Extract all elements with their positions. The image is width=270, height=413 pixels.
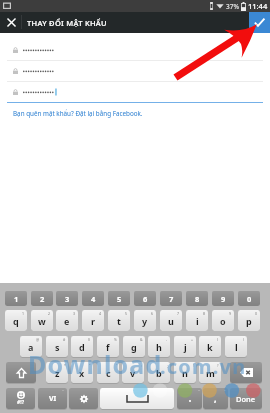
button[interactable]: r — [82, 310, 104, 331]
staticText: @ — [36, 337, 40, 342]
button[interactable]: Period — [177, 388, 202, 409]
staticText: 2 — [48, 311, 51, 316]
staticText: p — [246, 315, 252, 327]
button[interactable]: 1 — [5, 291, 27, 306]
staticText: .com.vn — [160, 353, 247, 380]
button[interactable]: t — [108, 310, 130, 331]
staticText: n — [182, 367, 188, 379]
staticText: 3 — [73, 311, 76, 316]
staticText: 8 — [195, 294, 200, 304]
staticText: 3 — [65, 294, 70, 304]
staticText: f — [106, 341, 110, 353]
staticText: 0 — [255, 311, 258, 316]
button[interactable]: n — [174, 362, 196, 383]
button[interactable]: a — [20, 336, 42, 357]
button[interactable]: 4 — [82, 291, 104, 306]
button[interactable]: Shift — [6, 362, 36, 383]
staticText: 1 — [22, 311, 25, 316]
button[interactable]: Emoji — [6, 388, 35, 409]
staticText: 4 — [91, 294, 96, 304]
button[interactable]: o — [212, 310, 234, 331]
staticText: b — [156, 367, 162, 379]
button[interactable]: g — [123, 336, 145, 357]
staticText: h — [156, 341, 162, 353]
button[interactable] — [0, 82, 270, 102]
button[interactable]: Backspace — [230, 362, 262, 383]
button[interactable]: x — [71, 362, 93, 383]
staticText: 6 — [151, 311, 154, 316]
staticText: q — [13, 315, 19, 327]
button[interactable]: q — [5, 310, 27, 331]
staticText: 8 — [203, 311, 206, 316]
button[interactable]: e — [56, 310, 78, 331]
staticText: 7 — [177, 311, 180, 316]
button[interactable]: Done — [230, 388, 262, 409]
staticText: Download — [28, 347, 163, 381]
button[interactable]: VI — [38, 388, 67, 409]
staticText: 6 — [143, 294, 148, 304]
staticText: d — [79, 341, 85, 353]
staticText: 11:44 — [248, 1, 268, 11]
staticText: ·· — [198, 388, 200, 393]
button[interactable]: h — [148, 336, 170, 357]
staticText: a — [28, 341, 34, 353]
staticText: # — [63, 337, 66, 342]
button[interactable]: 8 — [186, 291, 208, 306]
button[interactable]: 6 — [134, 291, 156, 306]
button[interactable]: v — [122, 362, 144, 383]
staticText: o — [220, 315, 226, 327]
button[interactable]: Bạn quên mật khẩu? Đặt lại bằng Facebook… — [13, 109, 143, 118]
staticText: e — [64, 315, 70, 327]
button[interactable]: y — [134, 310, 156, 331]
staticText: Done — [236, 394, 256, 404]
button[interactable]: s — [46, 336, 68, 357]
staticText: l — [235, 341, 238, 353]
button[interactable]: 5 — [108, 291, 130, 306]
button[interactable] — [0, 61, 270, 81]
staticText: y — [142, 315, 148, 327]
button[interactable]: w — [31, 310, 53, 331]
button[interactable]: l — [225, 336, 247, 357]
button[interactable]: k — [199, 336, 221, 357]
staticText: i — [196, 315, 199, 327]
staticText: % — [114, 337, 117, 342]
button[interactable]: c — [97, 362, 119, 383]
staticText: z — [55, 367, 60, 379]
button[interactable]: 7 — [160, 291, 182, 306]
staticText: : — [141, 363, 142, 368]
button[interactable]: i — [186, 310, 208, 331]
staticText: * — [64, 363, 66, 368]
button[interactable]: 2 — [31, 291, 53, 306]
staticText: j — [184, 341, 187, 353]
button[interactable]: u — [160, 310, 182, 331]
staticText: 1 — [14, 294, 19, 304]
staticText: 4 — [99, 311, 102, 316]
staticText: r — [91, 315, 96, 327]
button[interactable] — [0, 40, 270, 60]
button[interactable]: Comma — [203, 388, 228, 409]
staticText: VI — [49, 394, 57, 404]
button[interactable]: Settings — [69, 388, 98, 409]
staticText: " — [89, 363, 91, 368]
button[interactable]: 9 — [212, 291, 234, 306]
button[interactable]: 3 — [56, 291, 78, 306]
staticText: ( — [217, 337, 219, 342]
staticText: v — [130, 367, 136, 379]
staticText: g — [131, 341, 137, 353]
staticText: 5 — [125, 311, 128, 316]
staticText: k — [207, 341, 213, 353]
staticText: 9 — [221, 294, 226, 304]
button[interactable]: Close — [0, 12, 23, 33]
staticText: x — [79, 367, 85, 379]
button[interactable]: p — [238, 310, 260, 331]
button[interactable]: m — [199, 362, 221, 383]
button[interactable]: Space — [100, 388, 174, 409]
button[interactable]: d — [71, 336, 93, 357]
staticText: 37% — [226, 2, 239, 11]
button[interactable]: j — [174, 336, 196, 357]
button[interactable]: Confirm — [249, 12, 270, 33]
button[interactable]: f — [97, 336, 119, 357]
button[interactable]: 0 — [238, 291, 260, 306]
button[interactable]: z — [46, 362, 68, 383]
button[interactable]: b — [148, 362, 170, 383]
